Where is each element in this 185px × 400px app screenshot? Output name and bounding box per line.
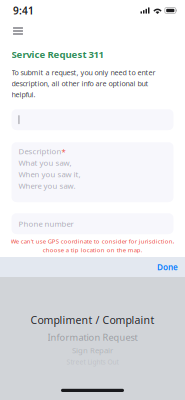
staticText: *	[61, 146, 65, 156]
staticText: To submit a request, you only need to en…	[11, 68, 155, 99]
staticText: Compliment / Complaint	[30, 313, 154, 327]
staticText: We can't use GPS coordinate to consider …	[10, 237, 174, 254]
staticText: Where you saw.	[18, 181, 75, 191]
button[interactable]: Menu	[0, 22, 37, 40]
button[interactable]: Phone number	[11, 213, 173, 234]
staticText: Street Lights Out	[66, 357, 118, 366]
staticText: Description	[18, 146, 61, 156]
staticText: Service Request 311	[11, 48, 103, 61]
staticText: 9:41	[13, 4, 34, 17]
staticText: Information Request	[47, 331, 137, 343]
staticText: When you saw it,	[18, 169, 80, 179]
button[interactable]	[11, 109, 173, 130]
staticText: Phone number	[18, 218, 73, 229]
staticText: Done	[157, 262, 178, 272]
staticText: What you saw,	[18, 158, 71, 168]
button[interactable]: Description	[11, 142, 173, 202]
button[interactable]: Done	[148, 257, 185, 277]
staticText: Sign Repair	[72, 345, 113, 355]
